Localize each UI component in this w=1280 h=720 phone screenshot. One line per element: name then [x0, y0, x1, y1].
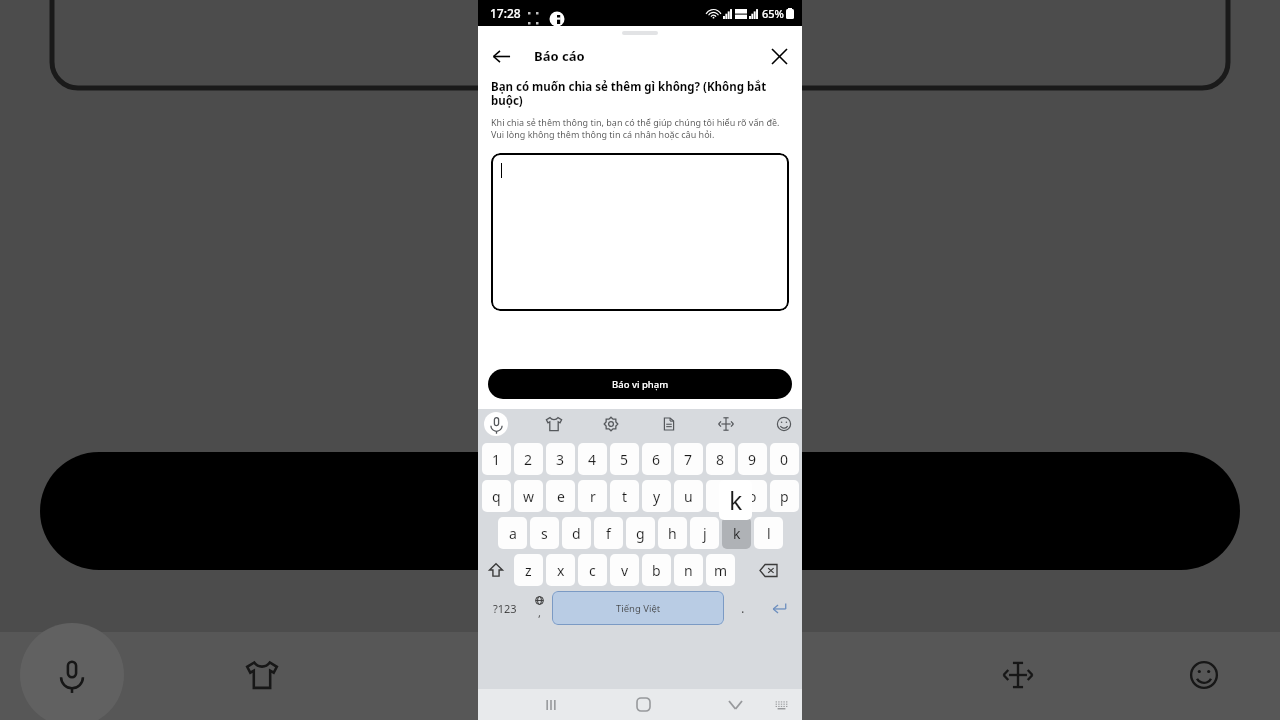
button[interactable]: z	[514, 554, 543, 586]
button[interactable]	[491, 153, 789, 311]
button[interactable]: Nhập bằng giọng nói	[484, 412, 508, 436]
button[interactable]: b	[642, 554, 671, 586]
button[interactable]: v	[610, 554, 639, 586]
staticText: p	[780, 487, 789, 506]
staticText: 8	[716, 450, 725, 469]
staticText: j	[703, 524, 707, 543]
staticText: Báo vi phạm	[612, 378, 669, 391]
button[interactable]: d	[562, 517, 591, 549]
button[interactable]: Tiếng Việt	[552, 591, 724, 625]
button[interactable]: 3	[546, 443, 575, 475]
staticText: d	[572, 524, 581, 543]
button[interactable]: .	[724, 591, 762, 625]
staticText: s	[541, 524, 548, 543]
button[interactable]: Quay lại	[486, 41, 516, 71]
button[interactable]: j	[690, 517, 719, 549]
button[interactable]: 7	[674, 443, 703, 475]
button[interactable]: x	[546, 554, 575, 586]
staticText: 65%	[762, 6, 784, 21]
staticText: Khi chia sẻ thêm thông tin, bạn có thể g…	[491, 116, 789, 140]
button[interactable]: 8	[706, 443, 735, 475]
button[interactable]: 5	[610, 443, 639, 475]
button[interactable]: n	[674, 554, 703, 586]
button[interactable]: e	[546, 480, 575, 512]
button[interactable]: Đóng	[764, 41, 794, 71]
button[interactable]: k	[722, 517, 751, 549]
button[interactable]: p	[770, 480, 799, 512]
staticText: 2	[524, 450, 533, 469]
button[interactable]: m	[706, 554, 735, 586]
button[interactable]: a	[498, 517, 527, 549]
button[interactable]: ?123	[484, 591, 526, 625]
staticText: k	[733, 524, 741, 543]
button[interactable]: Ẩn bàn phím	[718, 689, 752, 720]
staticText: v	[621, 561, 629, 580]
staticText: f	[606, 524, 611, 543]
button[interactable]: f	[594, 517, 623, 549]
button[interactable]: Chế độ con trỏ	[714, 412, 738, 436]
staticText: c	[589, 561, 596, 580]
button[interactable]: 9	[738, 443, 767, 475]
staticText: l	[767, 524, 771, 543]
staticText: 4	[588, 450, 597, 469]
staticText: 17:28	[490, 5, 521, 21]
staticText: m	[714, 561, 728, 580]
button[interactable]: Đổi ngôn ngữ	[526, 591, 552, 625]
staticText: y	[653, 487, 661, 506]
staticText: Báo cáo	[534, 47, 585, 65]
button[interactable]: Bàn phím	[766, 690, 796, 720]
staticText: 9	[748, 450, 757, 469]
button[interactable]: q	[482, 480, 511, 512]
staticText: k	[729, 483, 743, 517]
button[interactable]: t	[610, 480, 639, 512]
button[interactable]: Xuống dòng	[762, 591, 796, 625]
staticText: u	[684, 487, 693, 506]
staticText: w	[523, 487, 535, 506]
button[interactable]: g	[626, 517, 655, 549]
button[interactable]: Báo vi phạm	[488, 369, 792, 399]
button[interactable]: h	[658, 517, 687, 549]
button[interactable]: s	[530, 517, 559, 549]
button[interactable]: 1	[482, 443, 511, 475]
staticText: b	[652, 561, 661, 580]
staticText: 6	[652, 450, 661, 469]
staticText: o	[748, 487, 757, 506]
staticText: Bạn có muốn chia sẻ thêm gì không? (Khôn…	[491, 79, 789, 108]
staticText: n	[684, 561, 693, 580]
button[interactable]: Màn hình chính	[626, 689, 660, 720]
staticText: 7	[684, 450, 693, 469]
staticText: 5	[620, 450, 629, 469]
staticText: 0	[780, 450, 789, 469]
button[interactable]: y	[642, 480, 671, 512]
button[interactable]: 6	[642, 443, 671, 475]
button[interactable]: w	[514, 480, 543, 512]
button[interactable]: 2	[514, 443, 543, 475]
button[interactable]: 4	[578, 443, 607, 475]
staticText: h	[668, 524, 677, 543]
button[interactable]: Cài đặt	[599, 412, 623, 436]
button[interactable]: 0	[770, 443, 799, 475]
button[interactable]: Bảng nhớ tạm	[657, 412, 681, 436]
button[interactable]: Hình dán	[542, 412, 566, 436]
button[interactable]: r	[578, 480, 607, 512]
staticText: z	[525, 561, 532, 580]
staticText: ?123	[493, 601, 517, 616]
staticText: 3	[556, 450, 565, 469]
staticText: a	[509, 524, 517, 543]
staticText: r	[590, 487, 596, 506]
button[interactable]: Biểu tượng cảm xúc	[772, 412, 796, 436]
button[interactable]: u	[674, 480, 703, 512]
button[interactable]: Gần đây	[534, 689, 568, 720]
staticText: .	[741, 599, 745, 617]
button[interactable]: l	[754, 517, 783, 549]
staticText: q	[492, 487, 501, 506]
button[interactable]: Shift	[478, 554, 514, 586]
staticText: 1	[492, 450, 501, 469]
staticText: t	[622, 487, 628, 506]
button[interactable]: o	[738, 480, 767, 512]
button[interactable]: Xóa	[735, 554, 802, 586]
button[interactable]: c	[578, 554, 607, 586]
button[interactable]: i	[706, 480, 735, 512]
staticText: Tiếng Việt	[616, 602, 661, 615]
